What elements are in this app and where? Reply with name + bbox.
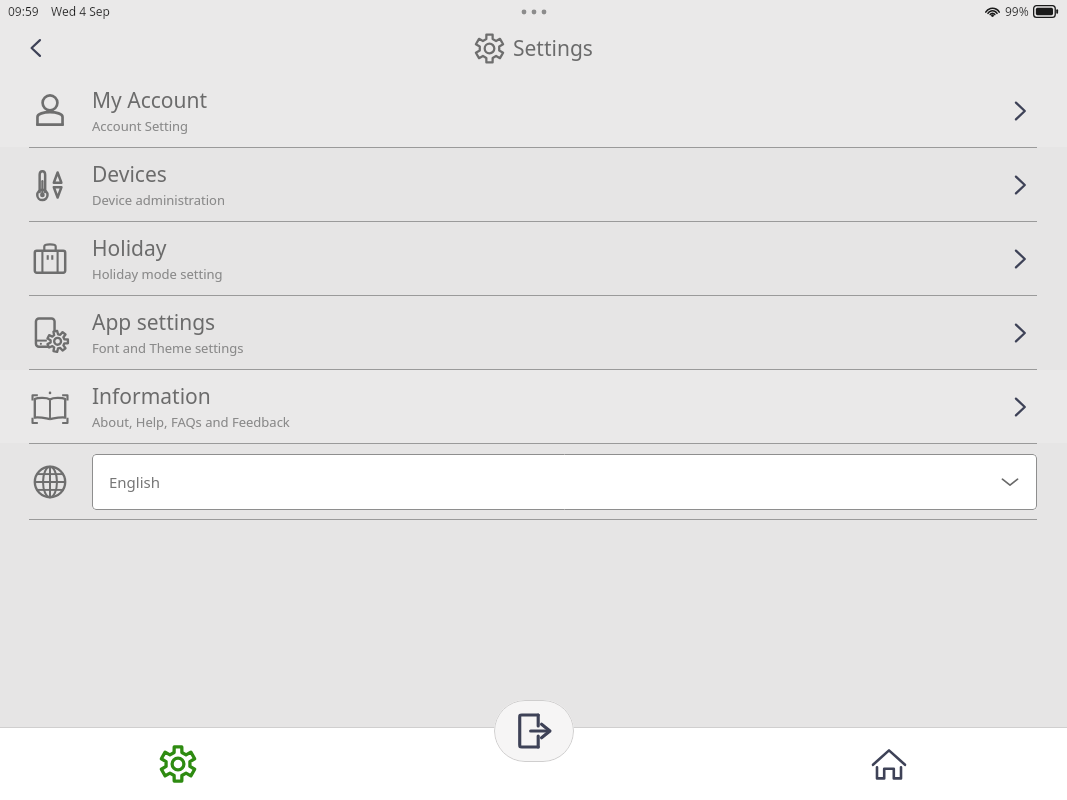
staticText: Device administration <box>92 191 225 209</box>
staticText: Devices <box>92 160 167 189</box>
button[interactable]: Back <box>16 28 56 68</box>
staticText: Information <box>92 382 211 411</box>
staticText: Holiday <box>92 234 167 263</box>
button[interactable]: Devices <box>0 148 1067 221</box>
button[interactable]: Settings <box>0 728 355 800</box>
staticText: Holiday mode setting <box>92 265 223 283</box>
button[interactable]: My Account <box>0 74 1067 147</box>
staticText: Font and Theme settings <box>92 339 244 357</box>
button[interactable]: App settings <box>0 296 1067 369</box>
staticText: About, Help, FAQs and Feedback <box>92 413 290 431</box>
staticText: App settings <box>92 308 216 337</box>
staticText: English <box>109 472 161 492</box>
staticText: 09:59 <box>8 3 39 19</box>
button[interactable]: Log out <box>494 700 574 762</box>
staticText: 99% <box>1005 3 1029 19</box>
staticText: Settings <box>513 34 593 63</box>
button[interactable]: English <box>92 454 1037 510</box>
button[interactable]: Holiday <box>0 222 1067 295</box>
staticText: Wed 4 Sep <box>51 3 110 19</box>
button[interactable]: Information <box>0 370 1067 443</box>
button[interactable]: Home <box>711 728 1067 800</box>
staticText: My Account <box>92 86 208 115</box>
staticText: Account Setting <box>92 117 189 135</box>
